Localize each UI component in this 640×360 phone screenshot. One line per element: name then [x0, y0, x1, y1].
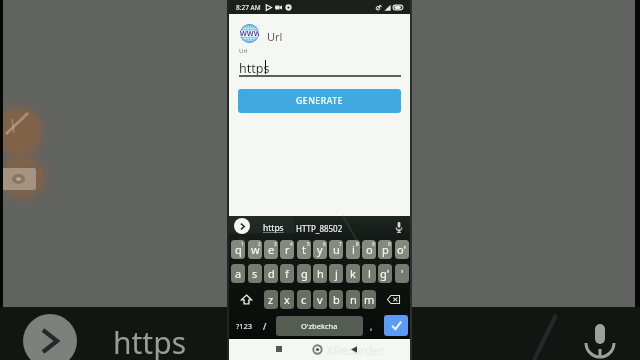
staticText: g: [301, 266, 308, 281]
button[interactable]: q: [231, 240, 245, 259]
staticText: n: [350, 292, 357, 307]
button[interactable]: Home: [310, 342, 324, 356]
button[interactable]: Voice input: [393, 220, 405, 235]
button[interactable]: o': [395, 240, 409, 259]
staticText: O'zbekcha: [301, 321, 338, 331]
staticText: 4: [290, 241, 293, 247]
staticText: s: [252, 266, 258, 281]
staticText: 8: [356, 241, 359, 247]
button[interactable]: Enter: [384, 315, 408, 336]
staticText: g': [380, 266, 390, 281]
staticText: a: [235, 266, 242, 281]
button[interactable]: https: [255, 216, 291, 240]
button[interactable]: ,: [365, 315, 377, 336]
staticText: 8:27 AM: [236, 3, 261, 12]
button[interactable]: u: [329, 240, 343, 259]
button[interactable]: b: [329, 290, 343, 309]
staticText: y: [317, 242, 323, 257]
button[interactable]: Backspace: [379, 290, 407, 309]
staticText: 6: [323, 241, 326, 247]
staticText: WWW: [240, 29, 259, 39]
button[interactable]: y: [313, 240, 327, 259]
button[interactable]: t: [297, 240, 311, 259]
button[interactable]: Back: [347, 342, 361, 356]
staticText: 7: [339, 241, 342, 247]
staticText: /: [263, 320, 267, 332]
staticText: t: [302, 242, 306, 257]
staticText: 9: [372, 241, 375, 247]
staticText: Url: [267, 29, 283, 44]
button[interactable]: More suggestions: [234, 218, 250, 234]
staticText: ,: [370, 320, 373, 332]
staticText: GENERATE: [296, 95, 343, 107]
staticText: HTTP_88502: [296, 223, 343, 234]
button[interactable]: j: [329, 264, 343, 283]
staticText: x: [284, 292, 290, 307]
button[interactable]: GENERATE: [238, 89, 401, 113]
button[interactable]: HTTP_88502: [291, 216, 347, 240]
button[interactable]: p: [378, 240, 392, 259]
staticText: 5: [307, 241, 310, 247]
staticText: https: [113, 322, 187, 360]
staticText: m: [364, 292, 375, 307]
button[interactable]: z: [264, 290, 278, 309]
staticText: XRecorder: [326, 342, 385, 358]
staticText: z: [268, 292, 274, 307]
staticText: ': [401, 266, 404, 281]
button[interactable]: d: [264, 264, 278, 283]
staticText: https: [239, 60, 270, 77]
staticText: https: [263, 222, 284, 234]
staticText: 3: [274, 241, 277, 247]
staticText: e: [268, 242, 275, 257]
staticText: j: [335, 266, 338, 281]
button[interactable]: f: [280, 264, 294, 283]
staticText: c: [301, 292, 307, 307]
staticText: q: [235, 242, 242, 257]
button[interactable]: Recents: [272, 342, 286, 356]
staticText: v: [317, 292, 323, 307]
staticText: w: [251, 242, 260, 257]
button[interactable]: c: [297, 290, 311, 309]
staticText: l: [368, 266, 371, 281]
button[interactable]: m: [362, 290, 376, 309]
button[interactable]: x: [280, 290, 294, 309]
button[interactable]: v: [313, 290, 327, 309]
button[interactable]: w: [248, 240, 262, 259]
staticText: ?123: [236, 321, 253, 331]
button[interactable]: e: [264, 240, 278, 259]
button[interactable]: ?123: [232, 315, 256, 336]
staticText: k: [350, 266, 356, 281]
staticText: o': [397, 242, 407, 257]
staticText: 0: [388, 241, 391, 247]
button[interactable]: i: [346, 240, 360, 259]
button[interactable]: s: [248, 264, 262, 283]
button[interactable]: O'zbekcha: [276, 316, 363, 336]
staticText: o: [366, 242, 373, 257]
staticText: d: [268, 266, 275, 281]
staticText: p: [382, 242, 389, 257]
staticText: f: [285, 266, 289, 281]
staticText: i: [352, 242, 355, 257]
button[interactable]: g: [297, 264, 311, 283]
staticText: 1: [241, 241, 244, 247]
staticText: r: [285, 242, 290, 257]
staticText: b: [333, 292, 340, 307]
staticText: u: [333, 242, 340, 257]
button[interactable]: g': [378, 264, 392, 283]
staticText: Url: [239, 47, 248, 55]
button[interactable]: n: [346, 290, 360, 309]
button[interactable]: r: [280, 240, 294, 259]
button[interactable]: Shift: [232, 290, 260, 309]
button[interactable]: o: [362, 240, 376, 259]
staticText: h: [317, 266, 324, 281]
button[interactable]: h: [313, 264, 327, 283]
button[interactable]: k: [346, 264, 360, 283]
staticText: 2: [258, 241, 261, 247]
button[interactable]: l: [362, 264, 376, 283]
button[interactable]: a: [231, 264, 245, 283]
button[interactable]: ': [395, 264, 409, 283]
button[interactable]: /: [259, 315, 271, 336]
